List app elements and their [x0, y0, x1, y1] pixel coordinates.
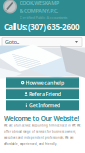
staticText: Welcome to Our Website! [4, 114, 79, 123]
staticText: Go to... [5, 38, 19, 46]
staticText: Call Us: (307) 635-2600 [4, 22, 80, 32]
staticText: How we can help [26, 79, 64, 86]
button[interactable]: Go to... [2, 37, 82, 46]
staticText: & COMPANY, P.C. [19, 7, 58, 14]
staticText: COOK, WESKAMP [19, 0, 59, 7]
staticText: Get Informed [29, 102, 60, 109]
staticText: Refer a Friend [29, 90, 61, 97]
staticText: We are a full-service Accounting firm li… [4, 124, 81, 146]
button[interactable]: Get Informed [6, 100, 79, 110]
staticText: Certified Public Accountants [19, 15, 67, 20]
button[interactable]: Refer a Friend [6, 89, 79, 99]
button[interactable]: How we can help [6, 77, 79, 88]
